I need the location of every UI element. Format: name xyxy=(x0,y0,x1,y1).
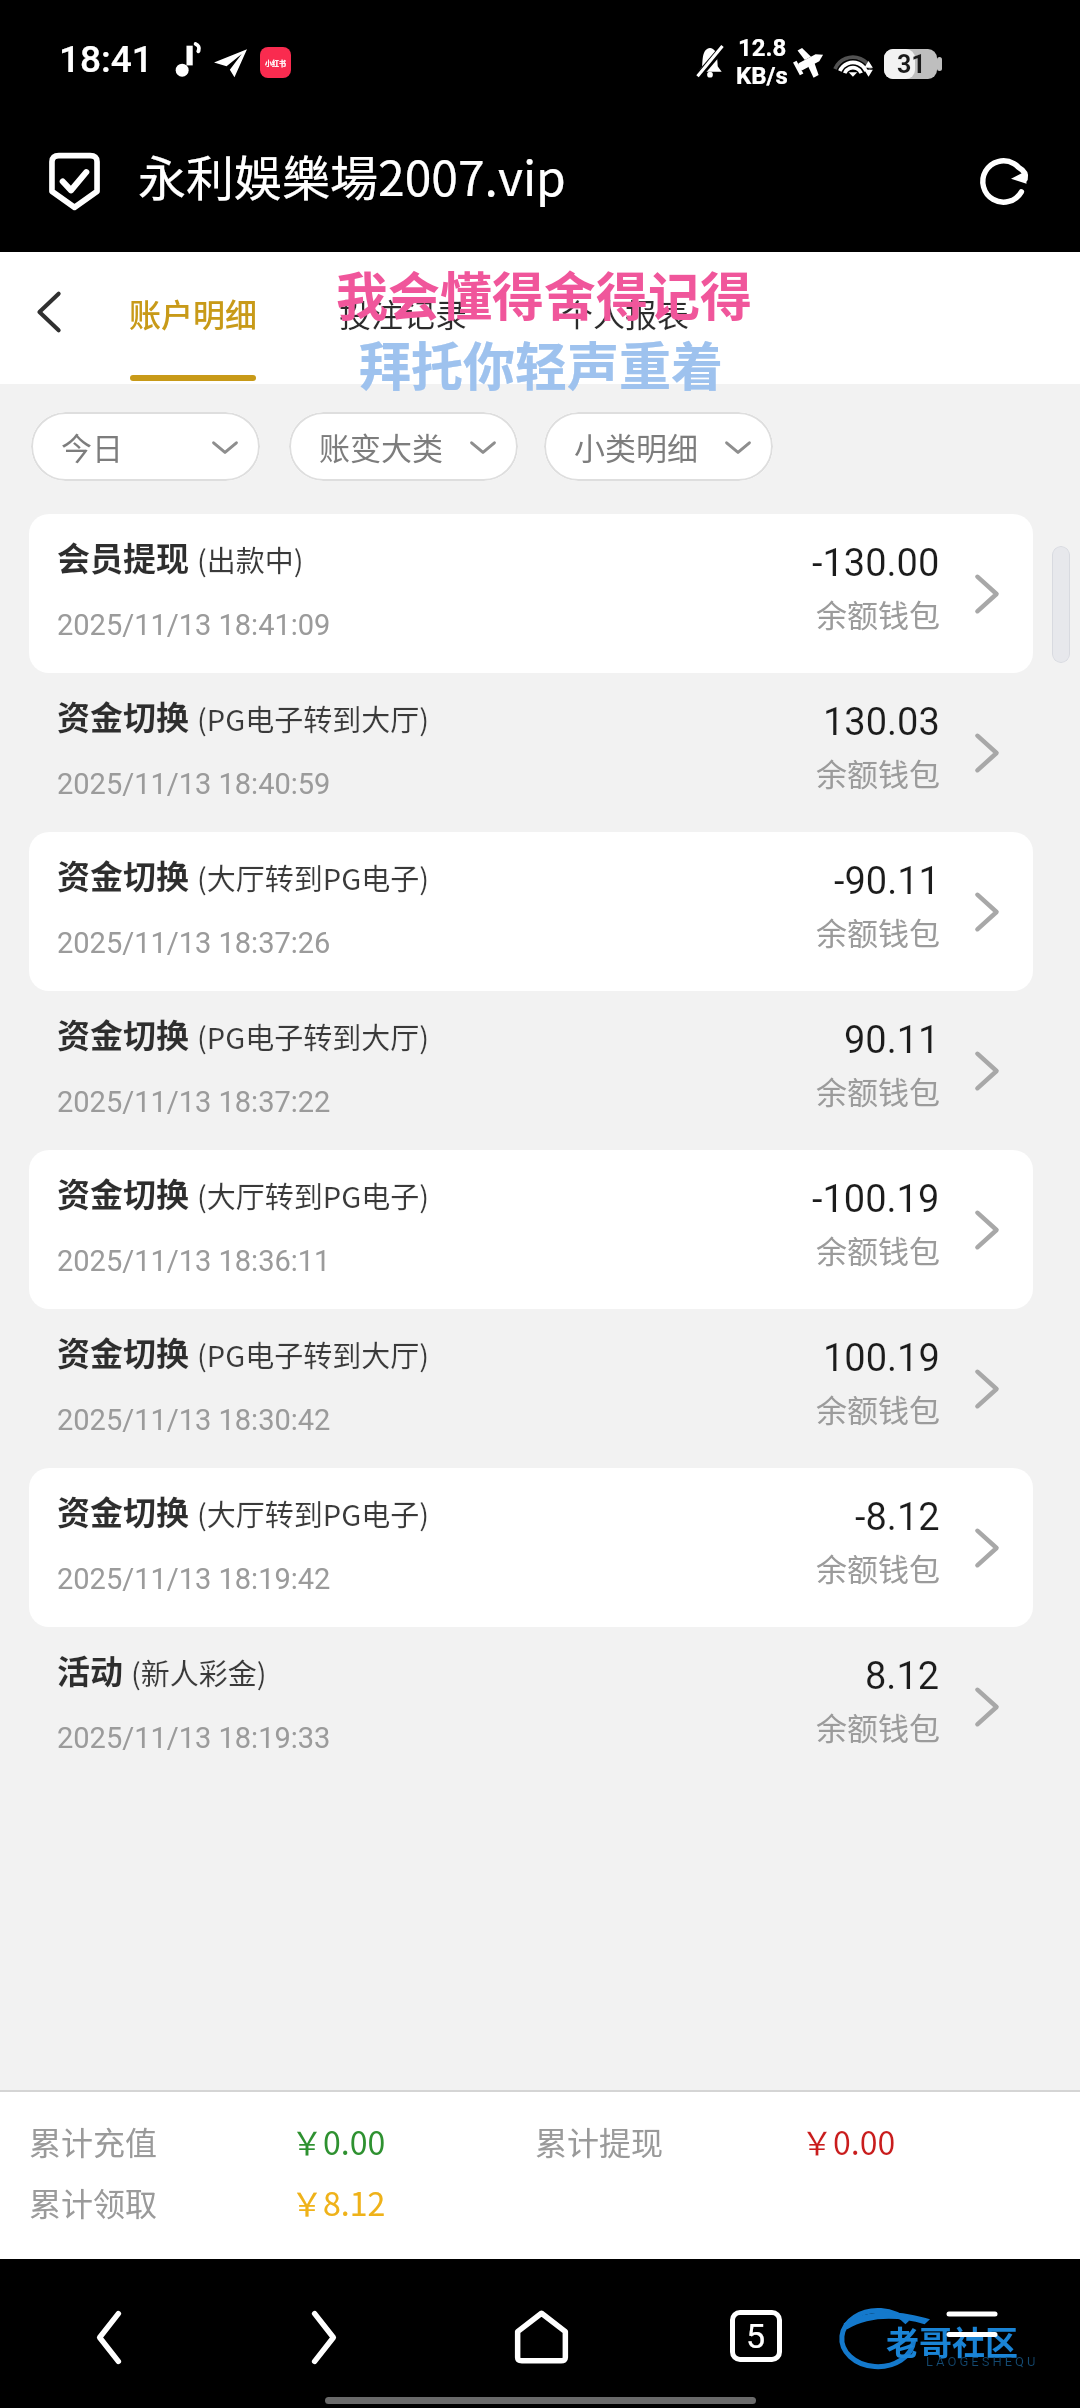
button[interactable]: Home xyxy=(499,2299,583,2375)
staticText: 累计提现 xyxy=(535,2118,664,2164)
staticText: 今日 xyxy=(61,424,123,469)
staticText: 累计充值 xyxy=(29,2118,158,2164)
button[interactable]: 资金切换 xyxy=(0,1468,1080,1627)
staticText: 2025/11/13 18:41:09 xyxy=(57,608,331,642)
staticText: 余额钱包 xyxy=(816,1227,940,1272)
staticText: 余额钱包 xyxy=(816,1704,940,1749)
staticText: 2025/11/13 18:37:22 xyxy=(57,1085,331,1119)
staticText: 资金切换 xyxy=(57,1010,189,1058)
button[interactable]: 小类明细 xyxy=(544,412,773,481)
staticText: 资金切换 xyxy=(57,692,189,740)
staticText: (出款中) xyxy=(197,538,304,580)
button[interactable]: 资金切换 xyxy=(0,1150,1080,1309)
staticText: 会员提现 xyxy=(57,533,189,581)
staticText: 2025/11/13 18:19:42 xyxy=(57,1562,331,1596)
button[interactable]: 资金切换 xyxy=(0,673,1080,832)
button[interactable]: 资金切换 xyxy=(0,991,1080,1150)
staticText: 余额钱包 xyxy=(816,750,940,795)
staticText: 小红书 xyxy=(265,58,286,68)
staticText: ￥8.12 xyxy=(291,2179,386,2225)
staticText: 资金切换 xyxy=(57,1169,189,1217)
button[interactable]: Back xyxy=(0,252,100,384)
staticText: 老哥社区 xyxy=(886,2317,1018,2365)
staticText: 5 xyxy=(746,2316,766,2356)
staticText: 2025/11/13 18:19:33 xyxy=(57,1721,331,1755)
staticText: -90.11 xyxy=(834,859,940,904)
staticText: 8.12 xyxy=(865,1654,940,1699)
staticText: 2025/11/13 18:37:26 xyxy=(57,926,331,960)
staticText: ￥0.00 xyxy=(801,2118,896,2164)
staticText: (PG电子转到大厅) xyxy=(197,1333,429,1375)
button[interactable]: 资金切换 xyxy=(0,1309,1080,1468)
staticText: KB/s xyxy=(736,62,788,90)
staticText: 我会懂得舍得记得 xyxy=(336,256,753,331)
staticText: 永利娛樂場2007.vip xyxy=(138,140,566,210)
staticText: 拜托你轻声重着 xyxy=(359,326,724,401)
button[interactable]: 会员提现 xyxy=(0,514,1080,673)
staticText: -8.12 xyxy=(855,1495,940,1540)
staticText: (大厅转到PG电子) xyxy=(197,1492,429,1534)
staticText: 小类明细 xyxy=(574,424,698,469)
button[interactable]: 今日 xyxy=(31,412,260,481)
button[interactable]: 个人报表 xyxy=(532,252,718,384)
staticText: 余额钱包 xyxy=(816,1545,940,1590)
button[interactable]: Menu xyxy=(947,2311,997,2341)
staticText: (新人彩金) xyxy=(131,1651,267,1693)
button[interactable]: Refresh xyxy=(966,144,1040,218)
button[interactable]: 账变大类 xyxy=(289,412,518,481)
staticText: 资金切换 xyxy=(57,1487,189,1535)
button[interactable]: 账户明细 xyxy=(100,252,286,384)
staticText: 2025/11/13 18:36:11 xyxy=(57,1244,331,1278)
staticText: 90.11 xyxy=(844,1018,940,1063)
staticText: ￥0.00 xyxy=(291,2118,386,2164)
button[interactable]: 5 xyxy=(730,2310,782,2362)
staticText: 12.8 xyxy=(738,34,787,62)
staticText: (PG电子转到大厅) xyxy=(197,697,429,739)
staticText: 130.03 xyxy=(823,700,940,745)
staticText: 余额钱包 xyxy=(816,909,940,954)
button[interactable]: Back xyxy=(67,2299,151,2375)
staticText: 账变大类 xyxy=(319,424,443,469)
button[interactable]: Secure site xyxy=(44,151,104,211)
staticText: 余额钱包 xyxy=(816,1068,940,1113)
staticText: 资金切换 xyxy=(57,851,189,899)
staticText: 31 xyxy=(897,50,926,79)
staticText: 18:41 xyxy=(59,38,153,81)
staticText: 余额钱包 xyxy=(816,591,940,636)
staticText: 2025/11/13 18:30:42 xyxy=(57,1403,331,1437)
staticText: 个人报表 xyxy=(561,290,690,336)
staticText: -130.00 xyxy=(812,541,940,586)
button[interactable]: 活动 xyxy=(0,1627,1080,1786)
staticText: (大厅转到PG电子) xyxy=(197,856,429,898)
staticText: (大厅转到PG电子) xyxy=(197,1174,429,1216)
button[interactable]: Forward xyxy=(282,2299,366,2375)
staticText: (PG电子转到大厅) xyxy=(197,1015,429,1057)
staticText: 100.19 xyxy=(823,1336,940,1381)
button[interactable]: 投注记录 xyxy=(310,252,496,384)
staticText: 投注记录 xyxy=(339,290,468,336)
staticText: LAOGESHEQU xyxy=(926,2354,1039,2369)
staticText: -100.19 xyxy=(812,1177,940,1222)
button[interactable]: 资金切换 xyxy=(0,832,1080,991)
staticText: 累计领取 xyxy=(29,2179,158,2225)
staticText: 2025/11/13 18:40:59 xyxy=(57,767,331,801)
staticText: 活动 xyxy=(57,1646,123,1694)
staticText: 账户明细 xyxy=(129,290,258,336)
staticText: 资金切换 xyxy=(57,1328,189,1376)
staticText: 余额钱包 xyxy=(816,1386,940,1431)
